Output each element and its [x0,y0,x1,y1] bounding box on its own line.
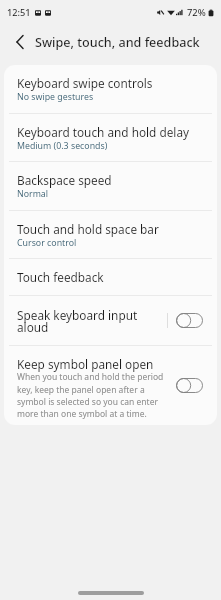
staticText: Normal [17,188,49,200]
staticText: 72% [187,6,206,19]
staticText: Touch and hold space bar [17,221,159,237]
button[interactable]: Back [9,31,31,53]
button[interactable]: Keyboard touch and hold delay [4,114,217,161]
staticText: Medium (0.3 seconds) [17,140,108,152]
staticText: No swipe gestures [17,91,94,103]
staticText: When you touch and hold the period key, … [17,371,167,419]
staticText: Keyboard touch and hold delay [17,124,190,140]
button[interactable]: Backspace speed [4,162,217,210]
staticText: 12:51 [7,6,31,19]
button[interactable]: Touch feedback [4,259,217,295]
button[interactable]: Keyboard swipe controls [4,65,217,113]
button[interactable]: Touch and hold space bar [4,211,217,258]
staticText: Touch feedback [17,269,104,285]
staticText: Cursor control [17,237,77,249]
staticText: Keep symbol panel open [17,356,154,372]
staticText: Speak keyboard input aloud [17,307,167,336]
staticText: Swipe, touch, and feedback [35,34,200,51]
staticText: Keyboard swipe controls [17,75,153,91]
button[interactable]: Toggle [176,313,203,328]
button[interactable]: Keep symbol panel open [4,346,217,425]
button[interactable]: Toggle [176,378,203,393]
button[interactable]: Speak keyboard input aloud [4,296,217,345]
staticText: Backspace speed [17,172,112,188]
